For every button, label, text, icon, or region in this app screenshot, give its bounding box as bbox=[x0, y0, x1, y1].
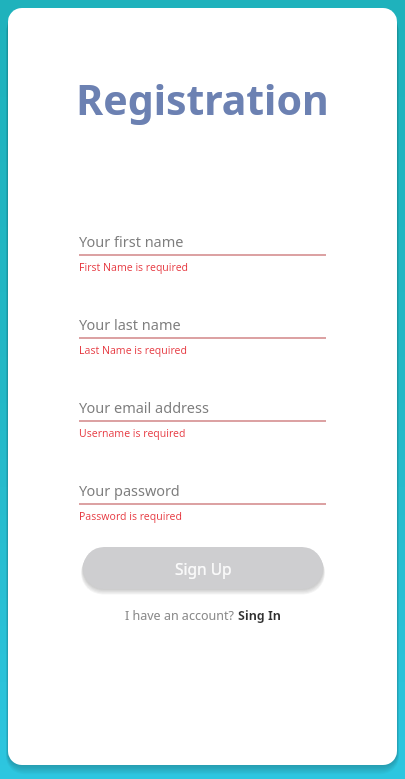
button[interactable]: Your first name bbox=[79, 227, 326, 274]
button[interactable]: Your email address bbox=[79, 393, 326, 440]
staticText: Username is required bbox=[79, 426, 186, 440]
staticText: I have an account? bbox=[125, 607, 238, 624]
staticText: Your last name bbox=[79, 314, 181, 334]
staticText: Your password bbox=[79, 480, 180, 500]
button[interactable]: Your last name bbox=[79, 310, 326, 357]
button[interactable]: Your password bbox=[79, 476, 326, 523]
staticText: Sing In bbox=[238, 607, 281, 624]
button[interactable]: Sign Up bbox=[83, 547, 323, 589]
staticText: First Name is required bbox=[79, 260, 189, 274]
staticText: Last Name is required bbox=[79, 343, 187, 357]
button[interactable]: Sing In bbox=[238, 607, 281, 624]
staticText: Your email address bbox=[79, 397, 209, 417]
staticText: Password is required bbox=[79, 509, 182, 523]
staticText: Sign Up bbox=[175, 558, 232, 579]
staticText: Your first name bbox=[79, 231, 184, 251]
staticText: Registration bbox=[8, 71, 397, 127]
